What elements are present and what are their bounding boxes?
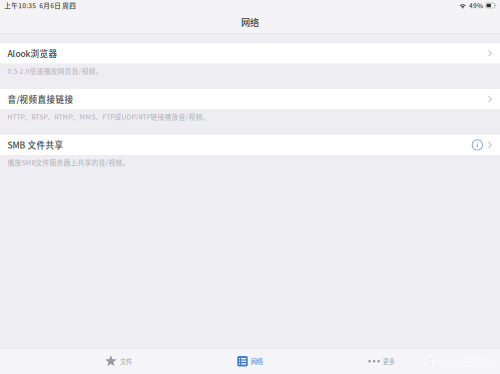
button[interactable]: Alook浏览器	[0, 43, 500, 63]
staticText: 网络	[241, 15, 259, 29]
staticText: 播放SMB文件服务器上共享的音/视频。	[7, 157, 129, 167]
staticText: 更多	[383, 357, 395, 366]
staticText: 音/视频直接链接	[7, 93, 73, 105]
staticText: 网络	[251, 357, 263, 366]
staticText: HTTP、RTSP、RTMP、MMS、FTP或UDP/RTP链接播放音/视频。	[7, 112, 209, 121]
staticText: 上午10:35 6月6日 周四	[4, 1, 76, 10]
staticText: 值	[424, 355, 433, 367]
button[interactable]: 网络	[237, 351, 263, 371]
button[interactable]: 文件	[105, 351, 132, 371]
staticText: 文件	[120, 357, 132, 366]
button[interactable]: 音/视频直接链接	[0, 89, 500, 109]
button[interactable]: 更多	[368, 351, 395, 371]
staticText: 0.5-2.0倍速播放网页音/视频。	[7, 66, 102, 76]
staticText: SMB 文件共享	[7, 139, 63, 151]
staticText: 49%	[469, 1, 483, 10]
staticText: Alook浏览器	[7, 47, 57, 59]
button[interactable]: SMB 文件共享	[0, 135, 500, 155]
